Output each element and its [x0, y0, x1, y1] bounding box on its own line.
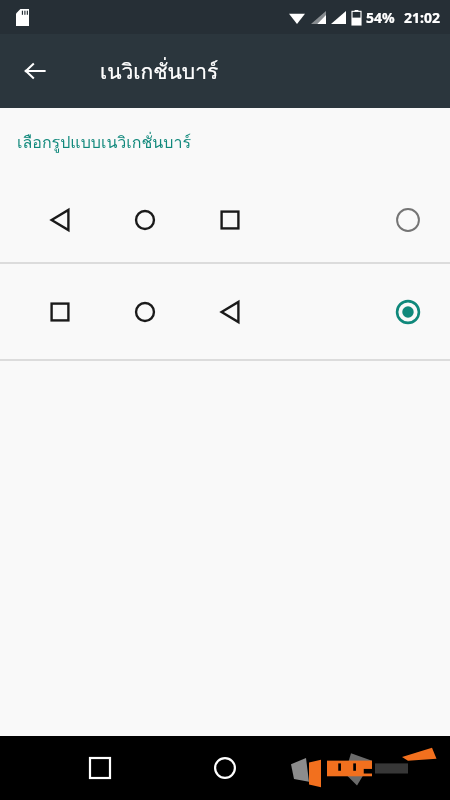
staticText: 54%	[366, 8, 395, 27]
button[interactable]: Back	[8, 44, 62, 98]
staticText: เนวิเกชั่นบาร์	[100, 55, 219, 88]
button[interactable]: Navigation layout option	[0, 177, 450, 262]
button[interactable]: Home	[203, 746, 247, 790]
button[interactable]: Recent apps	[78, 746, 122, 790]
staticText: เลือกรูปแบบเนวิเกชั่นบาร์	[17, 130, 192, 155]
button[interactable]: Navigation layout, selected	[0, 264, 450, 359]
staticText: 21:02	[404, 8, 440, 27]
